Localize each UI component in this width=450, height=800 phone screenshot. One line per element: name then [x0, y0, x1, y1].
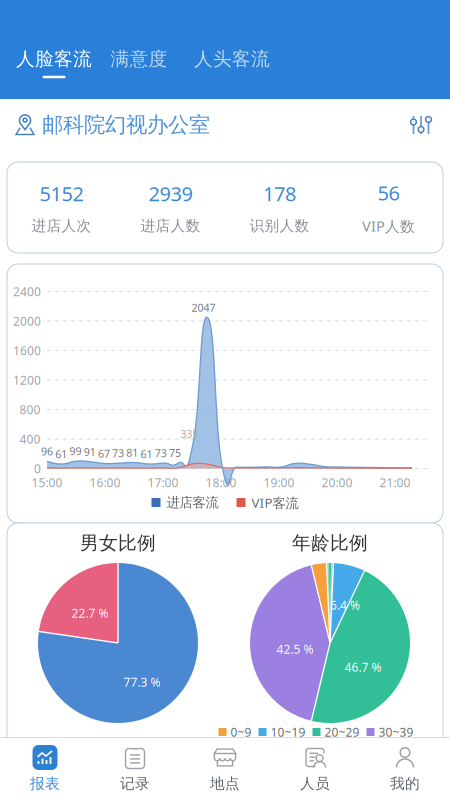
staticText: 2047 [191, 300, 215, 315]
staticText: 报表 [30, 774, 60, 792]
staticText: 我的 [390, 774, 420, 792]
staticText: 61 [141, 447, 153, 461]
staticText: 0 [34, 460, 41, 476]
staticText: 人脸客流 [16, 47, 92, 70]
staticText: 进店人数 [140, 217, 200, 235]
staticText: 67 [98, 446, 110, 461]
staticText: 56 [377, 179, 399, 206]
staticText: 邮科院幻视办公室 [42, 112, 210, 138]
staticText: 77.3 % [123, 674, 160, 690]
staticText: VIP客流 [251, 494, 298, 511]
button[interactable]: 人脸客流 [17, 44, 91, 88]
staticText: 46.7 % [344, 659, 381, 675]
staticText: 男女比例 [80, 531, 156, 554]
button[interactable]: 地点 [180, 737, 270, 800]
staticText: 335 [180, 427, 198, 441]
staticText: 0~9 [230, 724, 251, 740]
staticText: 42.5 % [276, 641, 313, 657]
button[interactable]: 我的 [360, 737, 450, 800]
staticText: 18:00 [205, 474, 236, 490]
staticText: 15:00 [31, 474, 62, 490]
staticText: 6.4 % [330, 597, 360, 613]
staticText: 91 [84, 445, 96, 459]
staticText: 61 [55, 447, 67, 461]
staticText: 800 [19, 401, 40, 417]
staticText: 20:00 [321, 474, 352, 490]
staticText: VIP人数 [362, 216, 415, 236]
staticText: 400 [19, 431, 40, 447]
button[interactable]: 记录 [90, 737, 180, 800]
staticText: 2000 [13, 313, 41, 329]
staticText: 识别人数 [249, 217, 309, 235]
button[interactable]: 报表 [0, 737, 90, 800]
staticText: 10~19 [270, 724, 305, 740]
staticText: 96 [41, 444, 53, 458]
staticText: 1200 [13, 372, 41, 388]
staticText: 178 [263, 180, 296, 207]
staticText: 人员 [300, 774, 330, 792]
staticText: 73 [112, 446, 124, 460]
staticText: 1600 [13, 342, 41, 358]
button[interactable]: Filter [402, 106, 440, 144]
staticText: 21:00 [379, 474, 410, 490]
staticText: 进店人次 [31, 217, 91, 235]
staticText: 99 [69, 444, 81, 458]
staticText: 22.7 % [71, 605, 108, 621]
staticText: 19:00 [263, 474, 294, 490]
button[interactable]: 人头客流 [195, 44, 269, 88]
staticText: 年龄比例 [292, 531, 368, 554]
staticText: 30~39 [378, 724, 413, 740]
button[interactable]: 人员 [270, 737, 360, 800]
staticText: 16:00 [89, 474, 120, 490]
staticText: 人头客流 [194, 47, 270, 70]
staticText: 进店客流 [166, 494, 218, 511]
staticText: 满意度 [110, 47, 167, 70]
button[interactable]: 满意度 [111, 44, 167, 88]
staticText: 2939 [148, 180, 192, 207]
staticText: 20~29 [324, 724, 359, 740]
staticText: 地点 [210, 774, 240, 792]
staticText: 73 [155, 446, 167, 460]
staticText: 75 [169, 446, 181, 460]
staticText: 81 [126, 445, 138, 460]
staticText: 记录 [120, 774, 150, 792]
button[interactable]: 邮科院幻视办公室 [0, 112, 210, 138]
staticText: 17:00 [147, 474, 178, 490]
staticText: 2400 [13, 283, 41, 299]
staticText: 5152 [39, 180, 83, 207]
